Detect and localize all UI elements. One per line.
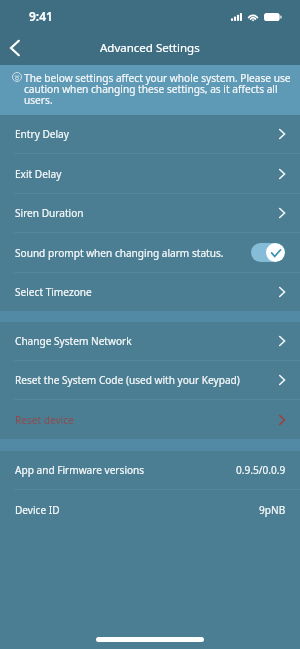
button[interactable]: Sound prompt when changing alarm status.	[0, 233, 300, 272]
button[interactable]: Device ID	[0, 490, 300, 529]
staticText: 9pNB	[259, 503, 286, 517]
button[interactable]: Reset the System Code (used with your Ke…	[0, 361, 300, 399]
staticText: Sound prompt when changing alarm status.	[15, 246, 251, 260]
staticText: Entry Delay	[15, 127, 279, 141]
staticText: The below settings affect your whole sys…	[24, 71, 292, 107]
button[interactable]: App and Firmware versions	[0, 451, 300, 489]
button[interactable]: Siren Duration	[0, 194, 300, 232]
staticText: Change System Network	[15, 334, 279, 348]
button[interactable]: Sound prompt toggle	[251, 243, 285, 262]
button[interactable]: Entry Delay	[0, 115, 300, 153]
staticText: 9:41	[29, 8, 53, 24]
button[interactable]: Back	[0, 31, 30, 65]
button[interactable]: Reset device	[0, 400, 300, 439]
staticText: 0.9.5/0.0.9	[236, 463, 286, 477]
button[interactable]: Exit Delay	[0, 154, 300, 193]
staticText: Reset the System Code (used with your Ke…	[15, 373, 279, 387]
staticText: App and Firmware versions	[15, 463, 236, 477]
staticText: Advanced Settings	[100, 40, 200, 56]
staticText: Device ID	[15, 503, 259, 517]
button[interactable]: Select Timezone	[0, 273, 300, 311]
button[interactable]: Change System Network	[0, 322, 300, 360]
staticText: Exit Delay	[15, 167, 279, 181]
staticText: Reset device	[15, 413, 279, 427]
staticText: Select Timezone	[15, 285, 279, 299]
staticText: Siren Duration	[15, 206, 279, 220]
